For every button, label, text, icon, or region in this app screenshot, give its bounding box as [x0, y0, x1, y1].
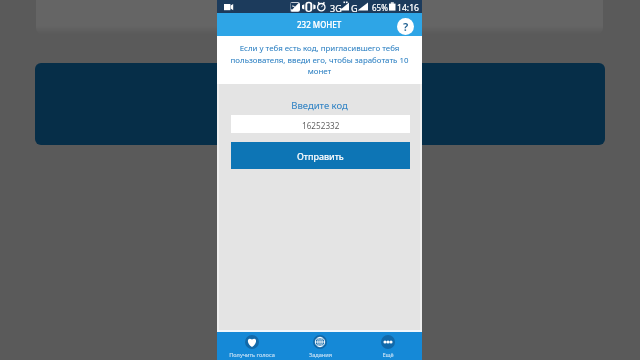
- staticText: 3G: [330, 2, 342, 14]
- staticText: Получить голоса: [229, 351, 275, 359]
- staticText: 65%: [372, 2, 388, 13]
- staticText: Ещё: [382, 351, 394, 359]
- staticText: Если у тебя есть код, пригласившего тебя…: [227, 43, 412, 76]
- button[interactable]: Задания: [286, 332, 354, 360]
- staticText: G: [351, 2, 358, 14]
- button[interactable]: Ещё: [354, 332, 422, 360]
- staticText: Введите код: [291, 99, 348, 111]
- button[interactable]: Help: [397, 18, 414, 35]
- staticText: 14:16: [397, 2, 419, 14]
- staticText: Задания: [309, 351, 332, 359]
- button[interactable]: 16252332: [231, 115, 410, 133]
- staticText: 232 МОНЕТ: [297, 19, 342, 30]
- staticText: Отправить: [297, 150, 344, 162]
- button[interactable]: Отправить: [231, 142, 410, 169]
- staticText: ?: [403, 19, 409, 34]
- staticText: 16252332: [302, 120, 340, 131]
- button[interactable]: Получить голоса: [217, 332, 286, 360]
